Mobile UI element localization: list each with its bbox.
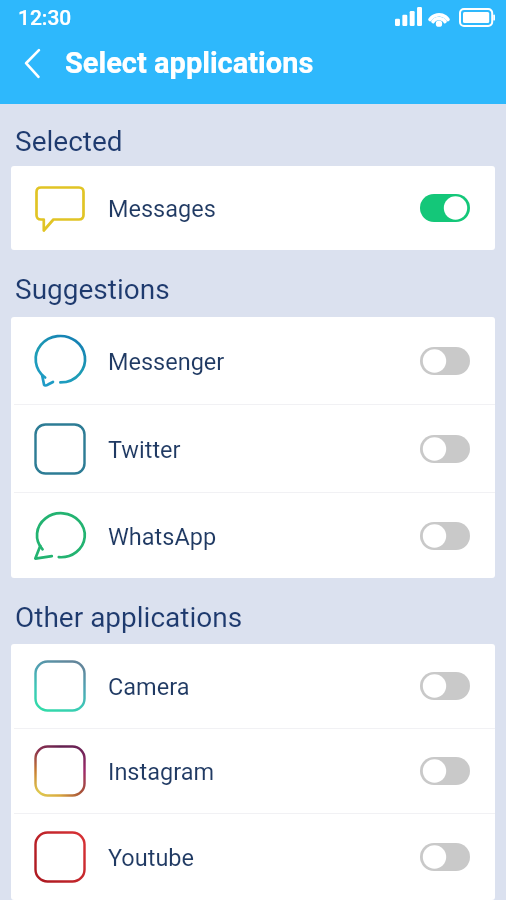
button[interactable]: WhatsApp <box>11 493 495 578</box>
staticText: Camera <box>108 673 190 701</box>
staticText: 12:30 <box>18 6 72 31</box>
button[interactable]: Back <box>0 36 65 90</box>
staticText: Youtube <box>108 844 195 872</box>
button[interactable]: Messenger <box>11 317 495 404</box>
staticText: Messenger <box>108 348 225 376</box>
button[interactable]: Camera <box>11 644 495 728</box>
staticText: Twitter <box>108 436 181 464</box>
staticText: Select applications <box>65 46 314 80</box>
button[interactable]: Twitter <box>11 405 495 492</box>
staticText: Messages <box>108 195 216 223</box>
button[interactable]: Youtube <box>11 814 495 900</box>
staticText: WhatsApp <box>108 523 217 551</box>
button[interactable]: Instagram <box>11 729 495 813</box>
staticText: Other applications <box>15 601 506 634</box>
staticText: Instagram <box>108 758 215 786</box>
staticText: Suggestions <box>15 273 506 306</box>
button[interactable]: Messages <box>11 166 495 250</box>
staticText: Selected <box>15 125 506 158</box>
